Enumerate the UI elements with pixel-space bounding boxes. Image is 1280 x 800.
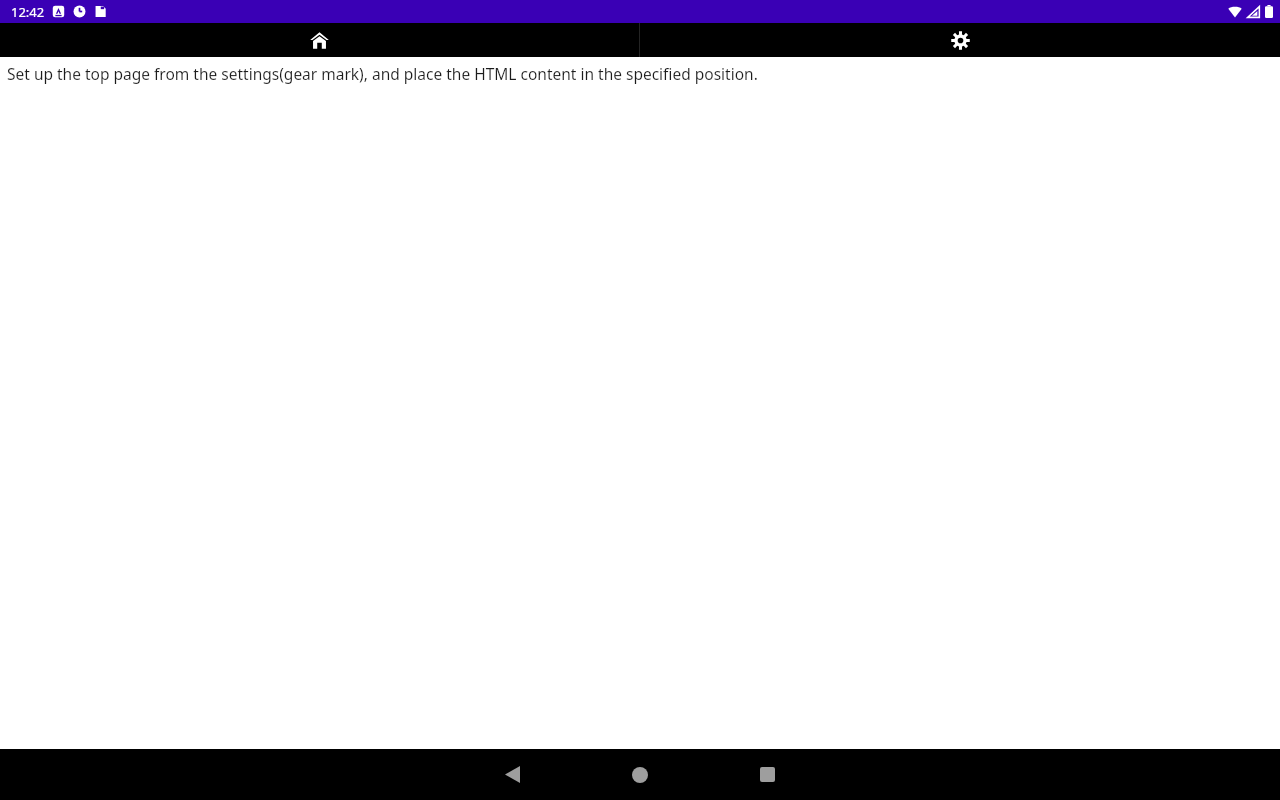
staticText: Set up the top page from the settings(ge… (7, 63, 758, 84)
button[interactable]: Settings (640, 23, 1280, 57)
staticText: 12:42 (11, 3, 45, 21)
button[interactable]: Home (608, 749, 672, 800)
button[interactable]: Recent apps (735, 749, 799, 800)
button[interactable]: Home (0, 23, 639, 57)
button[interactable]: Back (480, 749, 544, 800)
